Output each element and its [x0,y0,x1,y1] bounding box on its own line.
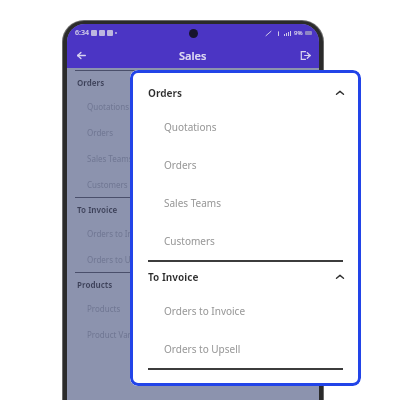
staticText: Quotations [164,120,217,134]
staticText: Orders [87,127,113,138]
button[interactable]: Log out [295,45,315,65]
staticText: Product Variants [87,329,150,340]
staticText: 6:34 [75,28,89,38]
button[interactable]: Orders to Invoice [130,292,361,330]
button[interactable]: Product Variants [67,321,319,347]
button[interactable]: Quotations [67,93,319,119]
button[interactable]: Orders to Invoice [67,220,319,246]
button[interactable]: Orders [67,71,319,93]
button[interactable]: Orders [67,119,319,145]
button[interactable]: Sales Teams [130,184,361,222]
staticText: Products [77,279,113,290]
staticText: Customers [87,179,128,190]
button[interactable]: Back [71,45,91,65]
staticText: To Invoice [148,270,199,284]
staticText: Orders [164,158,197,172]
button[interactable]: Products [67,273,319,295]
staticText: Sales Teams [164,196,221,210]
staticText: Customers [164,234,215,248]
button[interactable]: Products [67,295,319,321]
staticText: To Invoice [77,204,118,215]
staticText: Orders [77,77,105,88]
staticText: Sales [179,48,207,63]
button[interactable]: Orders [130,78,361,108]
button[interactable]: Customers [130,222,361,260]
staticText: Orders to Invoice [164,304,246,318]
staticText: Sales Teams [87,153,133,164]
staticText: Products [87,303,121,314]
button[interactable]: Quotations [130,108,361,146]
staticText: Orders to Upsell [87,254,149,265]
staticText: Quotations [87,101,129,112]
staticText: Orders [148,86,182,100]
button[interactable]: Orders [130,146,361,184]
button[interactable]: Orders to Upsell [67,246,319,272]
staticText: 9% [294,29,303,37]
button[interactable]: Customers [67,171,319,197]
staticText: Orders to Invoice [87,228,152,239]
button[interactable]: Sales Teams [67,145,319,171]
button[interactable]: To Invoice [130,262,361,292]
button[interactable]: To Invoice [67,198,319,220]
staticText: Orders to Upsell [164,342,241,356]
button[interactable]: Orders to Upsell [130,330,361,368]
